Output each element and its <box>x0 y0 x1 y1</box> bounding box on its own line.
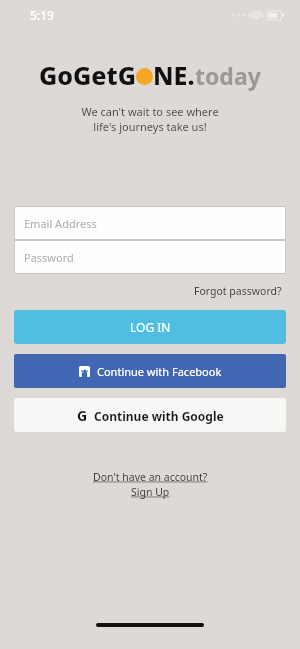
staticText: LOG IN <box>130 319 171 335</box>
staticText: Password <box>24 250 74 265</box>
button[interactable]: LOG IN <box>14 310 286 344</box>
button[interactable]: Forgot password? <box>190 280 286 302</box>
staticText: Continue with Facebook <box>97 364 222 379</box>
button[interactable]: Email Address <box>14 206 286 240</box>
button[interactable]: Continue with Facebook <box>14 354 286 388</box>
staticText: Don't have an account? <box>93 470 208 484</box>
staticText: Forgot password? <box>194 284 282 298</box>
button[interactable]: G <box>14 398 286 432</box>
staticText: We can't wait to see where life's journe… <box>0 104 300 134</box>
button[interactable]: Password <box>14 240 286 274</box>
staticText: Sign Up <box>131 485 170 499</box>
staticText: Continue with Google <box>94 408 224 424</box>
staticText: 5:19 <box>30 7 54 23</box>
staticText: today <box>195 60 261 91</box>
staticText: GoGetG <box>39 58 136 92</box>
other: Signal, Wi-Fi and battery status <box>232 10 284 20</box>
button[interactable]: Don't have an account? <box>0 470 300 499</box>
staticText: NE. <box>153 58 195 92</box>
staticText: Email Address <box>24 216 97 231</box>
staticText: G <box>77 406 88 425</box>
